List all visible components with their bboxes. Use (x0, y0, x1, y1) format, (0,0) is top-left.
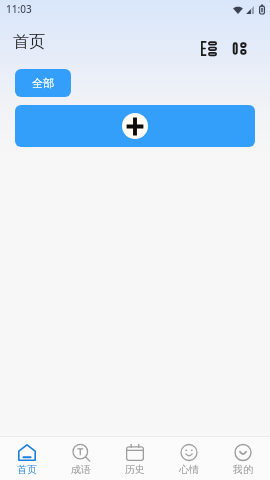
button[interactable]: 心情 (162, 437, 216, 480)
button[interactable]: 历史 (108, 437, 162, 480)
button[interactable]: 成语 (54, 437, 108, 480)
button[interactable]: 我的 (216, 437, 270, 480)
staticText: 成语 (71, 463, 91, 476)
staticText: 心情 (179, 463, 199, 476)
button[interactable]: Add (15, 105, 255, 147)
button[interactable]: List view (198, 37, 220, 59)
staticText: 首页 (13, 32, 45, 52)
button[interactable]: Grid view (228, 37, 250, 59)
button[interactable]: 首页 (0, 437, 54, 480)
staticText: 历史 (125, 463, 145, 476)
staticText: 全部 (32, 76, 54, 90)
staticText: 11:03 (6, 2, 32, 16)
staticText: 我的 (233, 463, 253, 476)
button[interactable]: 全部 (15, 69, 71, 97)
staticText: 首页 (17, 463, 37, 476)
